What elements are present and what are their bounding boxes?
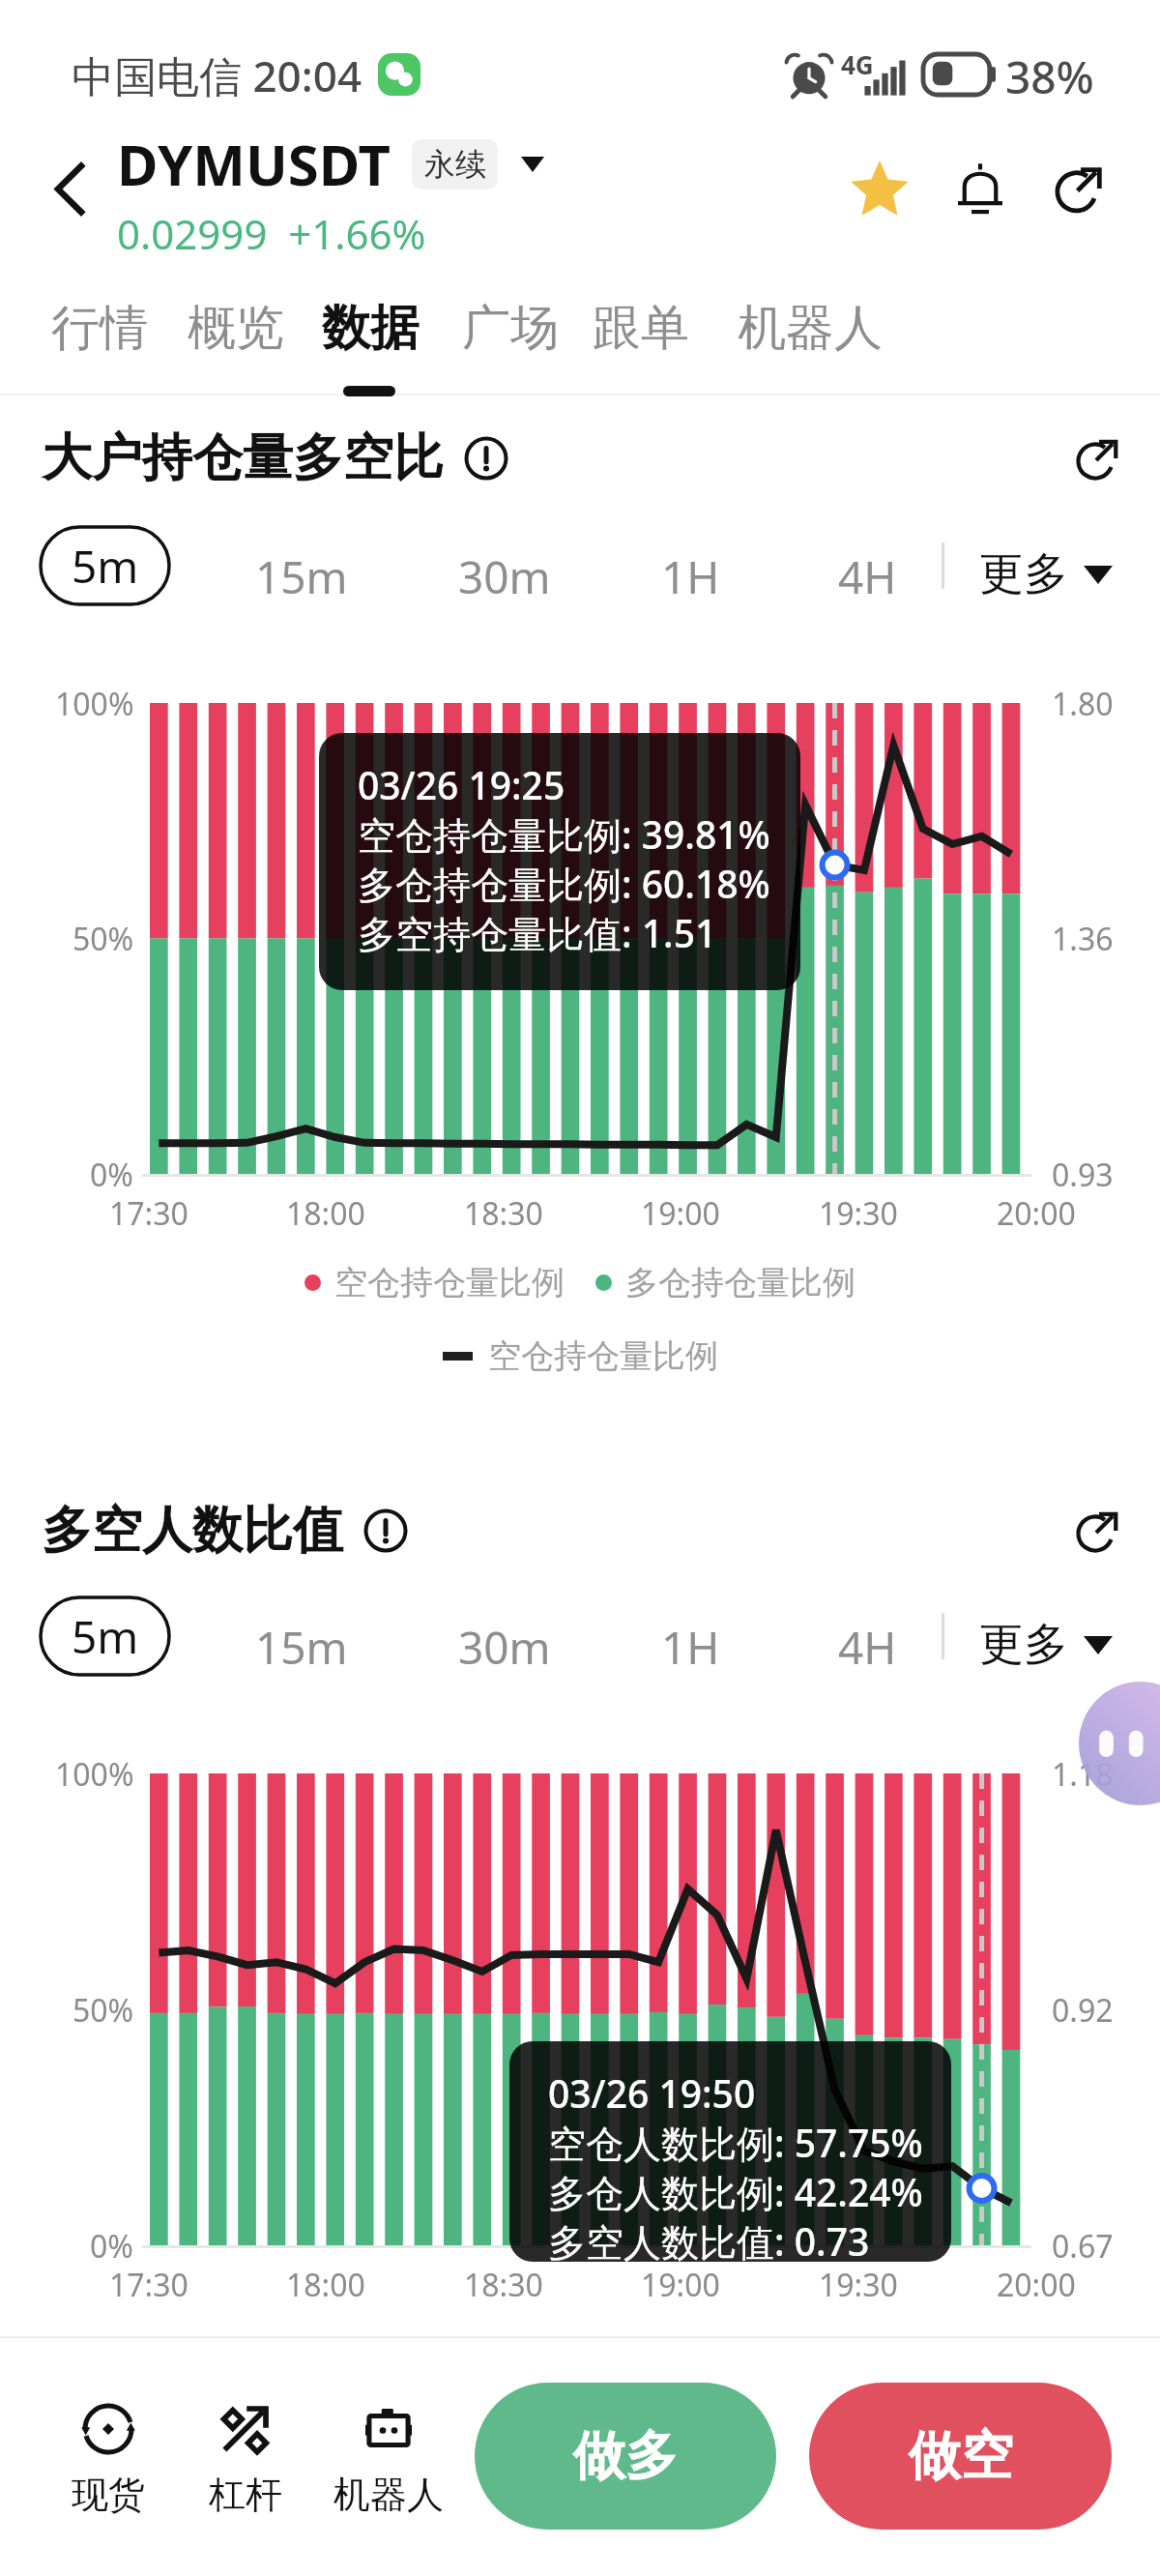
staticText: 18:00 [286,1192,365,1235]
staticText: 行情 [51,298,148,359]
staticText: 更多 [979,546,1068,602]
staticText: 03/26 19:50 [548,2067,756,2119]
button[interactable]: 4H [817,531,918,623]
button[interactable]: Info [459,431,513,485]
button[interactable]: 4H [817,1601,918,1693]
staticText: 17:30 [109,1192,188,1235]
staticText: 大户持仓量多空比 [42,426,444,490]
staticText: 现货 [72,2472,145,2518]
button[interactable]: 广场 [445,286,576,370]
button[interactable]: Open full screen chart [1067,1499,1131,1563]
button[interactable]: 杠杆 [178,2400,313,2518]
button[interactable]: 跟单 [575,286,707,370]
staticText: 数据 [322,298,419,359]
staticText: 19:30 [819,2264,898,2306]
button[interactable]: 更多 [971,1601,1120,1688]
staticText: 1.80 [1052,683,1114,725]
staticText: 15m [255,546,348,607]
staticText: 空仓持仓量比例: 39.81% [358,808,770,860]
staticText: 18:00 [286,2264,365,2306]
staticText: 19:30 [819,1192,898,1235]
staticText: 多仓持仓量比例: 60.18% [358,858,770,909]
staticText: 0% [90,2225,133,2268]
staticText: 广场 [462,298,559,359]
staticText: 多空人数比值 [42,1499,343,1563]
button[interactable]: 1H [640,1601,741,1693]
button[interactable]: Back [15,126,124,251]
button[interactable]: Contract type [511,143,554,186]
staticText: 0% [90,1154,133,1196]
staticText: 19:00 [641,1192,720,1235]
staticText: 0.92 [1052,1989,1114,2032]
staticText: 100% [55,1753,134,1796]
staticText: 19:00 [641,2264,720,2306]
staticText: 03/26 19:25 [358,759,565,810]
button[interactable]: Price alert [930,138,1030,239]
staticText: 5m [72,1606,139,1667]
button[interactable]: Favorite [829,138,930,239]
button[interactable]: 概览 [170,286,302,370]
button[interactable]: 15m [234,531,369,623]
button[interactable]: 更多 [971,531,1120,618]
staticText: 概览 [188,298,284,359]
staticText: 更多 [979,1617,1068,1673]
button[interactable]: 1H [640,531,741,623]
staticText: 30m [458,1617,551,1678]
staticText: 空仓持仓量比例 [334,1262,565,1303]
staticText: 永续 [424,145,486,184]
button[interactable]: 做空 [809,2383,1112,2530]
button[interactable]: 行情 [34,286,165,370]
staticText: 做空 [909,2423,1013,2489]
staticText: 0.02999 +1.66% [117,206,426,251]
staticText: 15m [255,1617,348,1678]
button[interactable]: 机器人 [321,2400,456,2518]
staticText: 1H [661,1617,720,1678]
staticText: 4H [838,1617,897,1678]
staticText: 30m [458,546,551,607]
button[interactable]: 现货 [41,2400,176,2518]
staticText: 1H [661,546,720,607]
staticText: 4H [838,546,897,607]
staticText: 1.18 [1052,1753,1114,1796]
staticText: 空仓人数比例: 57.75% [548,2117,923,2168]
staticText: 中国电信 20:04 [72,46,362,102]
staticText: 17:30 [109,2264,188,2306]
button[interactable]: Share [1030,138,1131,239]
staticText: 机器人 [738,298,883,359]
button[interactable]: Info [359,1504,413,1558]
staticText: 空仓持仓量比例 [488,1335,718,1377]
staticText: 18:30 [464,1192,543,1235]
staticText: 机器人 [333,2472,444,2518]
staticText: 做多 [573,2423,678,2489]
staticText: 38% [1005,46,1094,102]
button[interactable]: 机器人 [720,286,900,370]
staticText: 0.93 [1052,1154,1114,1196]
staticText: DYMUSDT [117,126,391,202]
staticText: 5m [72,536,139,597]
button[interactable]: 做多 [475,2383,776,2530]
button[interactable]: 数据 [304,286,436,370]
staticText: 跟单 [593,298,689,359]
staticText: 20:00 [997,2264,1076,2306]
button[interactable]: Assistant [1079,1682,1160,1805]
button[interactable]: 5m [39,1595,171,1677]
button[interactable]: Open full screen chart [1067,426,1131,490]
staticText: 多仓持仓量比例 [625,1262,855,1303]
button[interactable]: 30m [437,531,572,623]
staticText: 多仓人数比例: 42.24% [548,2166,923,2217]
staticText: 杠杆 [209,2472,282,2518]
staticText: 多空持仓量比值: 1.51 [358,907,717,958]
button[interactable]: 15m [234,1601,369,1693]
staticText: 100% [55,683,134,725]
staticText: 4G [841,47,874,81]
button[interactable]: 30m [437,1601,572,1693]
staticText: 50% [72,1989,134,2032]
staticText: 20:00 [997,1192,1076,1235]
staticText: 18:30 [464,2264,543,2306]
staticText: 1.36 [1052,918,1114,960]
staticText: 0.67 [1052,2225,1114,2268]
staticText: 多空人数比值: 0.73 [548,2215,870,2262]
button[interactable]: 永续 [412,139,498,190]
staticText: 50% [72,918,134,960]
button[interactable]: 5m [39,525,171,606]
